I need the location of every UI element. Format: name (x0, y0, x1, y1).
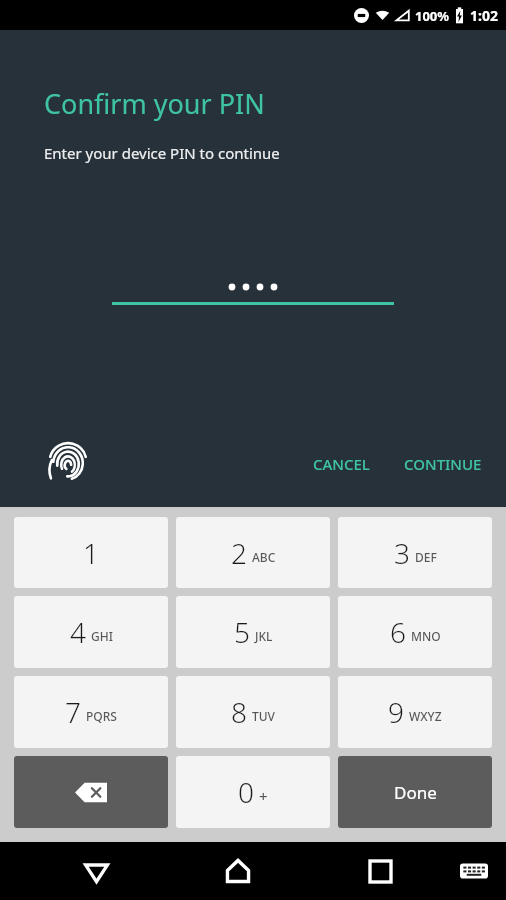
button[interactable]: Backspace (14, 756, 168, 828)
button[interactable]: 9 (338, 676, 492, 748)
staticText: GHI (91, 628, 113, 644)
staticText: Confirm your PIN (44, 85, 265, 122)
button[interactable]: 4 (14, 596, 168, 668)
staticText: DEF (415, 549, 437, 565)
staticText: JKL (255, 628, 273, 644)
button[interactable]: Switch keyboard (446, 843, 502, 899)
button[interactable]: 5 (176, 596, 330, 668)
button[interactable]: 2 (176, 517, 330, 588)
staticText: 100% (415, 7, 450, 25)
staticText: + (259, 786, 268, 806)
button[interactable]: Fingerprint (44, 436, 92, 484)
staticText: CANCEL (313, 454, 370, 474)
staticText: PQRS (86, 708, 117, 724)
staticText: 0 (238, 773, 254, 811)
staticText: Done (394, 781, 437, 804)
staticText: 5 (234, 613, 250, 651)
staticText: 6 (390, 613, 406, 651)
button[interactable]: 7 (14, 676, 168, 748)
staticText: 3 (394, 534, 410, 572)
staticText: ABC (252, 549, 276, 565)
button[interactable]: Done (338, 756, 492, 828)
staticText: WXYZ (409, 708, 442, 724)
staticText: 7 (65, 693, 81, 731)
button[interactable]: 8 (176, 676, 330, 748)
staticText: Enter your device PIN to continue (44, 143, 280, 163)
staticText: 9 (388, 693, 404, 731)
staticText: TUV (252, 708, 275, 724)
button[interactable]: 3 (338, 517, 492, 588)
staticText: CONTINUE (404, 454, 482, 474)
button[interactable]: 1 (14, 517, 168, 588)
button[interactable]: CANCEL (303, 442, 380, 486)
button[interactable]: Home (210, 843, 266, 899)
staticText: 1 (83, 534, 99, 572)
staticText: 1:02 (470, 6, 498, 25)
staticText: MNO (411, 628, 441, 644)
button[interactable]: Recents (352, 843, 408, 899)
button[interactable]: Back (68, 843, 124, 899)
staticText: 4 (70, 613, 86, 651)
button[interactable]: 0 (176, 756, 330, 828)
staticText: 2 (231, 534, 247, 572)
button[interactable]: CONTINUE (394, 442, 492, 486)
button[interactable]: 6 (338, 596, 492, 668)
staticText: 8 (231, 693, 247, 731)
